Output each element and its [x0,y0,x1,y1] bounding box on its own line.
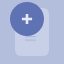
button[interactable]: Menu [21,28,39,46]
button[interactable]: Add [10,2,44,36]
